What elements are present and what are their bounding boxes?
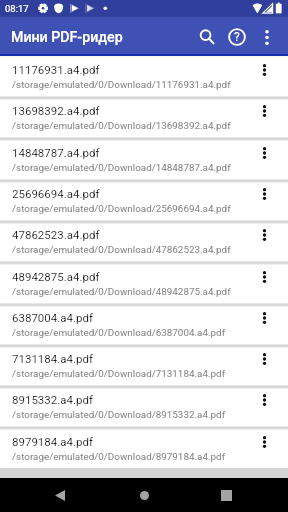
button[interactable]: 14848787.a4.pdf xyxy=(0,139,288,180)
button[interactable]: Recents xyxy=(202,478,250,512)
button[interactable]: More options xyxy=(252,99,276,123)
staticText: Мини PDF-ридер xyxy=(11,29,123,46)
staticText: 13698392.a4.pdf xyxy=(12,104,100,117)
staticText: 7131184.a4.pdf xyxy=(12,352,93,365)
staticText: 48942875.a4.pdf xyxy=(12,270,100,283)
staticText: /storage/emulated/0/Download/8915332.a4.… xyxy=(12,409,226,421)
button[interactable]: More options xyxy=(253,23,281,51)
button[interactable]: Search xyxy=(193,23,221,51)
staticText: /storage/emulated/0/Download/6387004.a4.… xyxy=(12,327,226,339)
button[interactable]: Help xyxy=(223,23,251,51)
staticText: /storage/emulated/0/Download/11176931.a4… xyxy=(12,79,231,91)
button[interactable]: More options xyxy=(252,141,276,165)
button[interactable]: 11176931.a4.pdf xyxy=(0,56,288,97)
button[interactable]: 7131184.a4.pdf xyxy=(0,345,288,386)
button[interactable]: 47862523.a4.pdf xyxy=(0,221,288,262)
staticText: 8979184.a4.pdf xyxy=(12,435,93,448)
staticText: /storage/emulated/0/Download/7131184.a4.… xyxy=(12,368,226,380)
staticText: /storage/emulated/0/Download/13698392.a4… xyxy=(12,120,231,132)
staticText: 6387004.a4.pdf xyxy=(12,311,93,324)
staticText: 25696694.a4.pdf xyxy=(12,187,100,200)
staticText: ? xyxy=(234,30,240,44)
button[interactable]: More options xyxy=(252,347,276,371)
button[interactable]: 8979184.a4.pdf xyxy=(0,428,288,469)
button[interactable]: More options xyxy=(252,306,276,330)
button[interactable]: 25696694.a4.pdf xyxy=(0,180,288,221)
button[interactable]: More options xyxy=(252,430,276,454)
button[interactable]: More options xyxy=(252,265,276,289)
button[interactable]: Back xyxy=(36,478,84,512)
staticText: /storage/emulated/0/Download/8979184.a4.… xyxy=(12,451,226,463)
staticText: 14848787.a4.pdf xyxy=(12,146,100,159)
staticText: 8915332.a4.pdf xyxy=(12,393,93,406)
staticText: /storage/emulated/0/Download/25696694.a4… xyxy=(12,203,231,215)
button[interactable]: More options xyxy=(252,58,276,82)
button[interactable]: 8915332.a4.pdf xyxy=(0,386,288,427)
staticText: /storage/emulated/0/Download/48942875.a4… xyxy=(12,286,231,298)
button[interactable]: 48942875.a4.pdf xyxy=(0,263,288,304)
staticText: 08:17 xyxy=(5,3,29,14)
button[interactable]: More options xyxy=(252,388,276,412)
staticText: 47862523.a4.pdf xyxy=(12,228,100,241)
button[interactable]: Home xyxy=(120,478,168,512)
button[interactable]: More options xyxy=(252,223,276,247)
staticText: /storage/emulated/0/Download/47862523.a4… xyxy=(12,244,231,256)
button[interactable]: More options xyxy=(252,182,276,206)
staticText: /storage/emulated/0/Download/14848787.a4… xyxy=(12,162,231,174)
button[interactable]: 13698392.a4.pdf xyxy=(0,97,288,138)
staticText: 11176931.a4.pdf xyxy=(12,63,100,76)
button[interactable]: 6387004.a4.pdf xyxy=(0,304,288,345)
